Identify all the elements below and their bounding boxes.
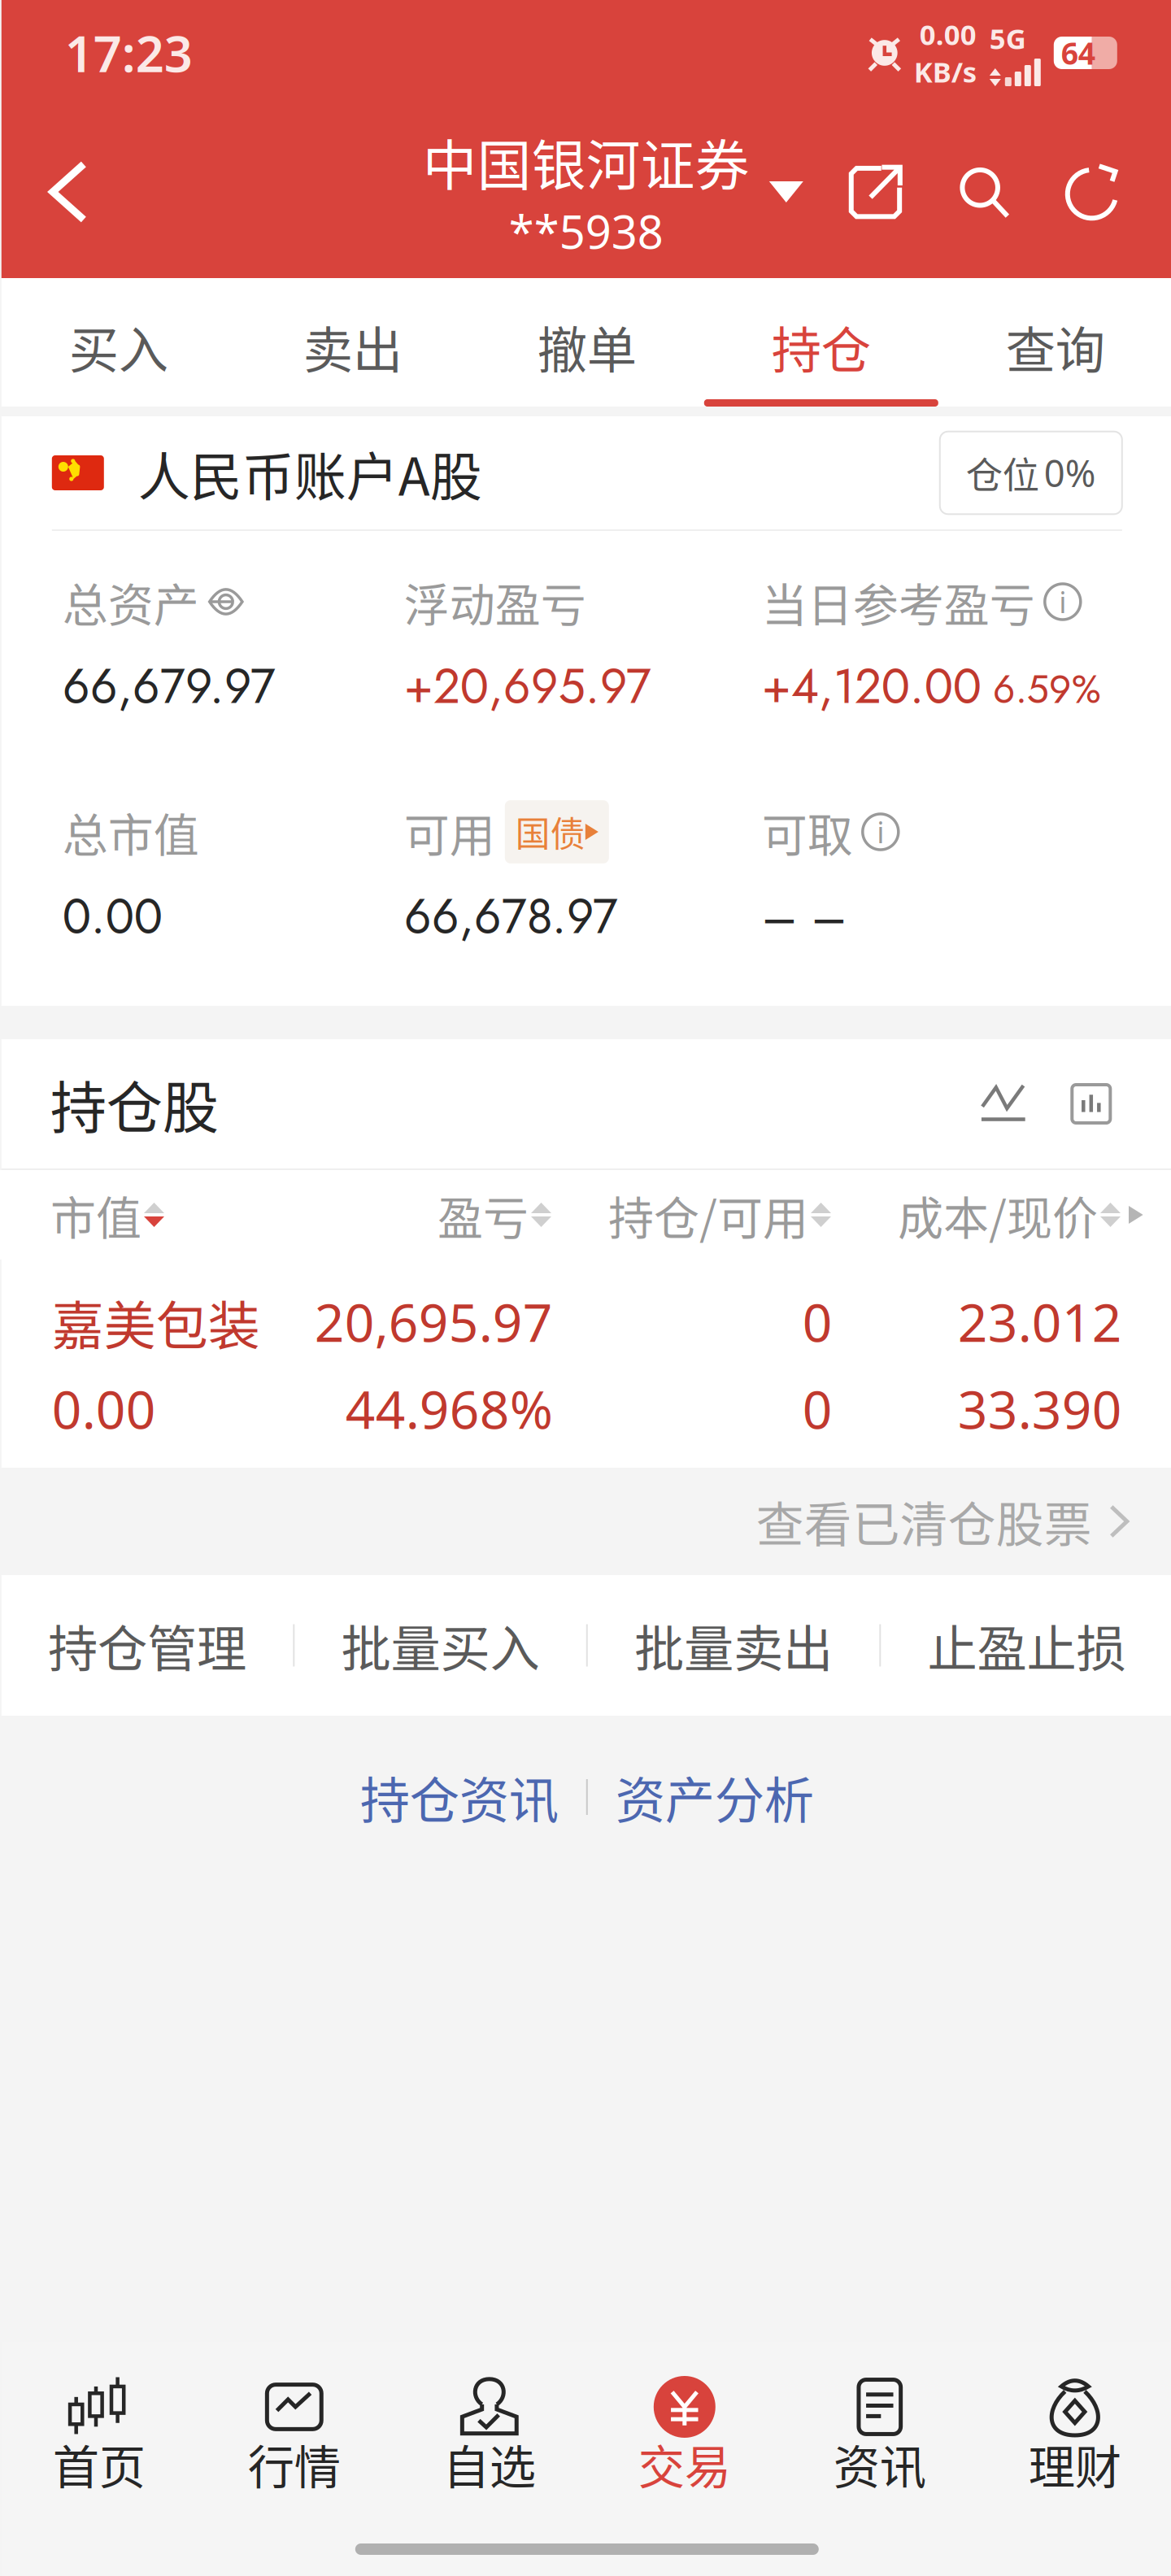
button[interactable]: Refresh	[1060, 159, 1125, 224]
staticText: KB/s	[914, 53, 976, 90]
staticText: 盈亏	[437, 1182, 529, 1248]
staticText: 国债	[515, 807, 585, 857]
staticText: 查看已清仓股票	[756, 1487, 1092, 1556]
staticText: 持仓股	[50, 1063, 219, 1145]
staticText: 卖出	[303, 311, 402, 383]
button[interactable]: 止盈止损	[881, 1575, 1171, 1716]
staticText: 资产分析	[615, 1761, 814, 1833]
staticText: 总资产	[62, 569, 199, 635]
staticText: +20,695.97	[404, 652, 651, 721]
button[interactable]: 理财	[977, 2360, 1171, 2506]
staticText: 中国银河证券	[423, 122, 750, 201]
staticText: 首页	[53, 2430, 145, 2498]
staticText: 买入	[69, 311, 168, 383]
button[interactable]: 撤单	[470, 278, 704, 407]
staticText: 0.00	[52, 1374, 156, 1443]
staticText: 批量买入	[341, 1609, 540, 1681]
staticText: +4,120.00	[762, 652, 981, 721]
button[interactable]: 自选	[392, 2360, 587, 2506]
staticText: 0%	[1044, 448, 1096, 497]
staticText: **5938	[509, 201, 663, 261]
button[interactable]: 买入	[1, 278, 236, 407]
button[interactable]: 批量卖出	[588, 1575, 879, 1716]
staticText: 0.00	[62, 882, 162, 951]
staticText: 当日参考盈亏	[762, 569, 1035, 635]
staticText: 嘉美包装	[52, 1284, 260, 1359]
button[interactable]: 持仓	[704, 278, 938, 407]
button[interactable]: 中国银河证券	[423, 122, 803, 261]
button[interactable]: 查询	[938, 278, 1171, 407]
staticText: 20,695.97	[315, 1287, 553, 1356]
staticText: – –	[762, 882, 846, 951]
staticText: 人民币账户A股	[138, 435, 482, 511]
button[interactable]: 资产分析	[588, 1740, 841, 1854]
staticText: 持仓/可用	[608, 1182, 808, 1248]
staticText: 理财	[1029, 2430, 1121, 2498]
button[interactable]: 查看已清仓股票	[1, 1468, 1171, 1575]
staticText: 浮动盈亏	[404, 569, 586, 635]
staticText: 5G	[989, 20, 1026, 57]
button[interactable]: 资讯	[782, 2360, 977, 2506]
button[interactable]: 首页	[1, 2360, 197, 2506]
button[interactable]: 批量买入	[295, 1575, 586, 1716]
staticText: 17:23	[65, 20, 193, 86]
button[interactable]: 持仓资讯	[332, 1740, 586, 1854]
staticText: 0.00	[920, 15, 976, 53]
staticText: 23.012	[958, 1287, 1122, 1356]
button[interactable]: 仓位	[940, 432, 1122, 514]
staticText: 查询	[1006, 311, 1105, 383]
button[interactable]: 卖出	[236, 278, 470, 407]
staticText: 仓位	[966, 446, 1039, 500]
staticText: 可取	[762, 799, 853, 865]
staticText: 持仓资讯	[360, 1761, 559, 1833]
button[interactable]: Bar chart	[1059, 1071, 1124, 1136]
staticText: i	[1059, 582, 1066, 621]
staticText: 持仓	[772, 311, 871, 383]
staticText: 自选	[443, 2430, 536, 2498]
staticText: 持仓管理	[48, 1609, 246, 1681]
staticText: 0	[802, 1287, 833, 1356]
button[interactable]: Search	[951, 159, 1016, 224]
button[interactable]: 行情	[197, 2360, 392, 2506]
staticText: 66,678.97	[404, 882, 618, 951]
staticText: 66,679.97	[62, 652, 276, 721]
staticText: 44.968%	[345, 1374, 553, 1443]
button[interactable]: 交易	[587, 2360, 782, 2506]
staticText: 资讯	[833, 2430, 926, 2498]
staticText: 33.390	[958, 1374, 1122, 1443]
staticText: 6.59%	[993, 661, 1101, 718]
staticText: 64	[1061, 33, 1095, 73]
staticText: 成本/现价	[898, 1182, 1098, 1248]
staticText: 可用	[404, 799, 495, 865]
button[interactable]: Back	[19, 143, 117, 241]
staticText: 止盈止损	[927, 1609, 1126, 1681]
staticText: 行情	[248, 2430, 341, 2498]
staticText: 批量卖出	[634, 1609, 833, 1681]
button[interactable]: 持仓管理	[1, 1575, 293, 1716]
staticText: 0	[802, 1374, 833, 1443]
staticText: 交易	[638, 2430, 731, 2498]
button[interactable]: Share	[842, 159, 907, 224]
button[interactable]: Line chart	[971, 1071, 1036, 1136]
staticText: 市值	[50, 1182, 141, 1248]
staticText: i	[877, 812, 884, 851]
staticText: 撤单	[537, 311, 637, 383]
staticText: 总市值	[62, 799, 199, 865]
button[interactable]: 嘉美包装	[1, 1260, 1171, 1468]
